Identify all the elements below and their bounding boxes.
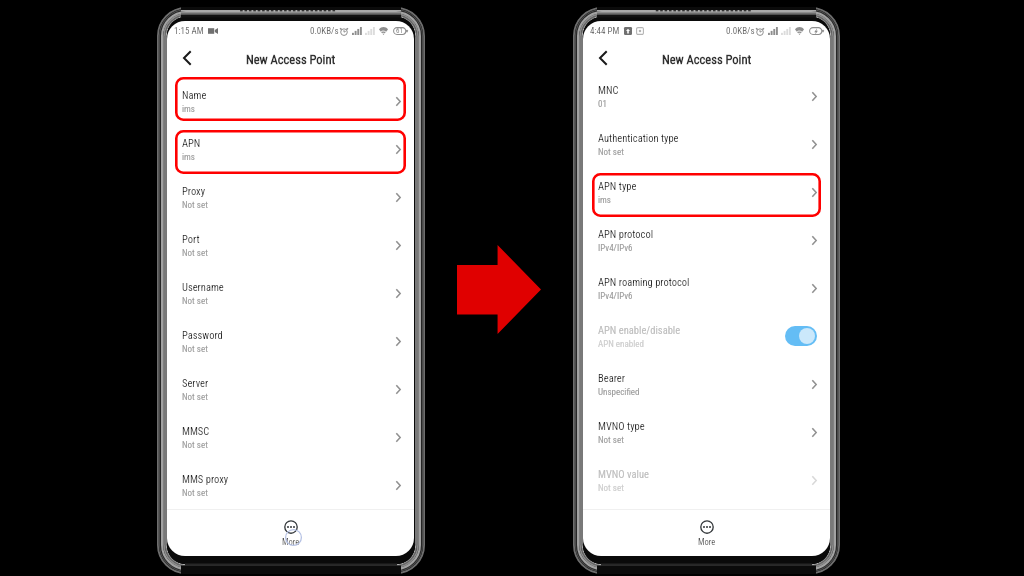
staticText: IPv4/IPv6 — [598, 291, 633, 302]
staticText: ims — [598, 195, 611, 206]
staticText: APN protocol — [598, 228, 654, 240]
staticText: Port — [182, 233, 200, 245]
button[interactable]: MVNO type — [583, 408, 830, 456]
staticText: APN enable/disable — [598, 324, 681, 336]
staticText: MNC — [598, 84, 619, 96]
staticText: 01 — [598, 99, 607, 110]
button[interactable]: Password — [167, 317, 414, 365]
staticText: More — [698, 537, 716, 547]
button[interactable]: Port — [167, 221, 414, 269]
staticText: Not set — [182, 200, 208, 211]
button[interactable]: APN roaming protocol — [583, 264, 830, 312]
staticText: APN — [182, 137, 201, 149]
button[interactable]: MMS proxy — [167, 461, 414, 509]
staticText: New Access Point — [662, 52, 752, 67]
button[interactable]: Username — [167, 269, 414, 317]
staticText: Not set — [182, 344, 208, 355]
staticText: MMS proxy — [182, 473, 229, 485]
staticText: Password — [182, 329, 223, 341]
button[interactable]: APN enable/disable — [583, 312, 830, 360]
staticText: MVNO value — [598, 468, 649, 480]
staticText: APN roaming protocol — [598, 276, 690, 288]
button[interactable]: More — [282, 520, 300, 547]
button[interactable]: Authentication type — [583, 120, 830, 168]
button[interactable]: APN — [167, 125, 414, 173]
staticText: 0.0KB/s — [310, 26, 339, 37]
staticText: More — [282, 537, 300, 547]
staticText: Not set — [598, 483, 624, 494]
staticText: Bearer — [598, 372, 625, 384]
button[interactable]: Name — [167, 77, 414, 125]
button[interactable]: APN protocol — [583, 216, 830, 264]
staticText: Username — [182, 281, 224, 293]
staticText: IPv4/IPv6 — [598, 243, 633, 254]
staticText: Server — [182, 377, 209, 389]
staticText: Name — [182, 89, 207, 101]
staticText: Not set — [598, 147, 624, 158]
staticText: 0.0KB/s — [726, 26, 755, 37]
button[interactable]: MNC — [583, 72, 830, 120]
staticText: ims — [182, 104, 195, 115]
staticText: Not set — [598, 435, 624, 446]
button[interactable]: Back — [175, 47, 199, 71]
staticText: New Access Point — [246, 52, 336, 67]
staticText: ims — [182, 152, 195, 163]
staticText: Authentication type — [598, 132, 679, 144]
button[interactable]: MMSC — [167, 413, 414, 461]
staticText: APN type — [598, 180, 637, 192]
staticText: MMSC — [182, 425, 210, 437]
staticText: Not set — [182, 392, 208, 403]
button[interactable]: Server — [167, 365, 414, 413]
staticText: 1:15 AM — [174, 26, 204, 37]
staticText: 4:44 PM — [590, 26, 620, 37]
staticText: Not set — [182, 440, 208, 451]
staticText: APN enabled — [598, 339, 644, 350]
staticText: MVNO type — [598, 420, 645, 432]
button[interactable]: Bearer — [583, 360, 830, 408]
staticText: Unspecified — [598, 387, 640, 398]
staticText: Proxy — [182, 185, 206, 197]
staticText: 61 — [396, 27, 403, 35]
button[interactable]: APN enable/disable toggle — [785, 326, 817, 346]
button[interactable]: Back — [591, 47, 615, 71]
staticText: Not set — [182, 248, 208, 259]
staticText: Not set — [182, 296, 208, 307]
button[interactable]: Proxy — [167, 173, 414, 221]
button[interactable]: MVNO value — [583, 456, 830, 504]
button[interactable]: APN type — [583, 168, 830, 216]
button[interactable]: More — [698, 520, 716, 547]
staticText: Not set — [182, 488, 208, 499]
